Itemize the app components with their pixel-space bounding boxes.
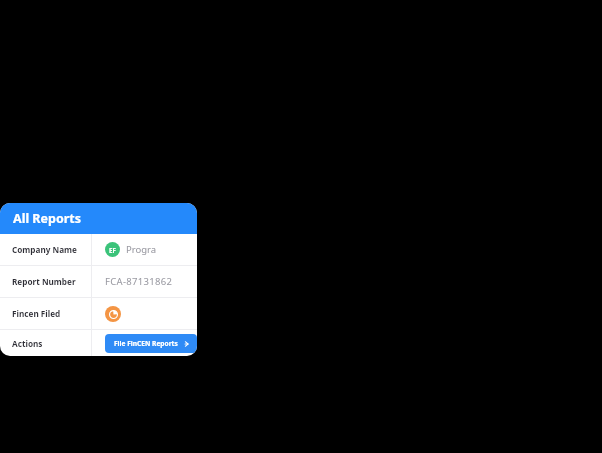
staticText: EF	[109, 246, 116, 254]
button[interactable]: Company Name	[0, 234, 197, 265]
button[interactable]: File FinCEN Reports	[105, 334, 197, 353]
button[interactable]: All Reports	[0, 203, 197, 234]
staticText: Report Number	[12, 276, 76, 287]
staticText: FCA-87131862	[105, 275, 173, 288]
button[interactable]: Fincen Filed	[0, 298, 197, 329]
staticText: Progra	[126, 243, 157, 256]
staticText: Company Name	[12, 244, 77, 255]
button[interactable]: Fincen filed status	[105, 306, 121, 322]
staticText: File FinCEN Reports	[114, 339, 178, 348]
button[interactable]: Actions	[0, 330, 197, 356]
staticText: All Reports	[13, 210, 82, 227]
button[interactable]: Report Number	[0, 266, 197, 297]
staticText: Fincen Filed	[12, 308, 61, 319]
staticText: Actions	[12, 338, 43, 349]
